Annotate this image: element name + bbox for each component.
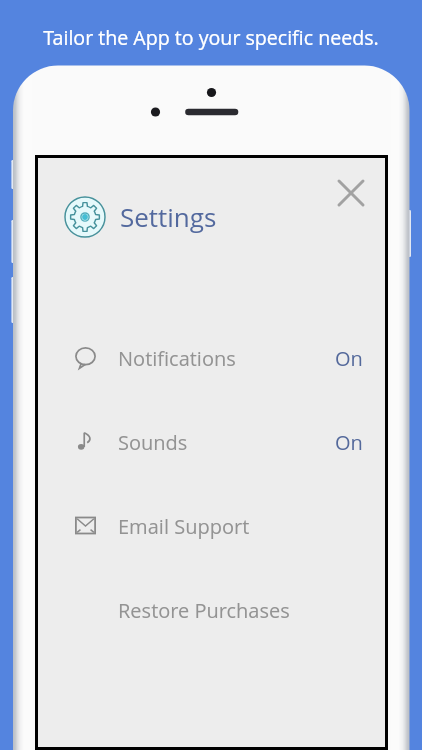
- button[interactable]: Close: [329, 171, 373, 215]
- staticText: Notifications: [118, 345, 236, 372]
- staticText: On: [335, 345, 363, 372]
- button[interactable]: Email Support: [38, 484, 385, 568]
- staticText: Sounds: [118, 429, 188, 456]
- button[interactable]: Restore Purchases: [38, 568, 385, 652]
- staticText: Restore Purchases: [118, 597, 290, 624]
- staticText: Tailor the App to your specific needs.: [0, 24, 422, 51]
- button[interactable]: Sounds: [38, 400, 385, 484]
- button[interactable]: Notifications: [38, 316, 385, 400]
- staticText: Email Support: [118, 513, 250, 540]
- staticText: Settings: [120, 199, 217, 234]
- staticText: On: [335, 429, 363, 456]
- button[interactable]: Settings: [64, 196, 217, 238]
